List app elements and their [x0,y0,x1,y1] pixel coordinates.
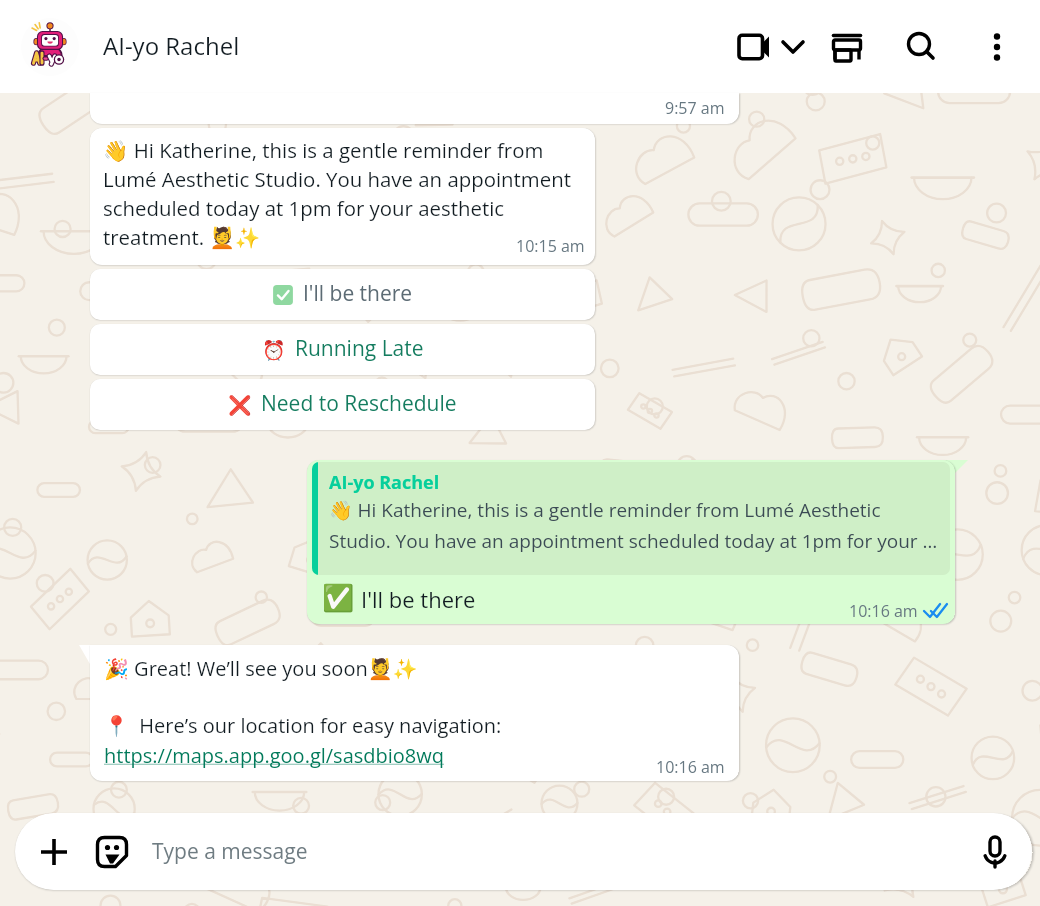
button[interactable]: Attach [32,830,76,874]
staticText: 9:57 am [665,97,725,119]
button[interactable]: ⏰ [90,324,595,375]
staticText: 10:16 am [849,600,918,622]
staticText: I'll be there [303,279,413,308]
button[interactable]: Business profile [823,23,871,71]
staticText: Running Late [295,334,424,363]
staticText: 10:15 am [516,235,585,257]
staticText: 🎉 Great! We’ll see you soon💆✨ [104,655,418,682]
staticText: 👋 Hi Katherine, this is a gentle reminde… [103,136,582,251]
button[interactable]: More options [977,27,1017,67]
staticText: AI-yo Rachel [329,470,440,495]
staticText: ❌ [228,394,252,416]
staticText: ⏰ [262,339,286,361]
button[interactable]: Call options [776,30,810,64]
staticText: ✅ [322,583,355,613]
button[interactable]: Stickers [90,830,134,874]
button[interactable]: Search [897,23,945,71]
staticText: AI-yo Rachel [103,29,240,62]
button[interactable]: https://maps.app.goo.gl/sasdbio8wq [104,739,445,766]
staticText: 10:16 am [656,756,725,778]
staticText: 👋 Hi Katherine, this is a gentle reminde… [329,497,940,554]
button[interactable]: ❌ [90,379,595,430]
staticText: I'll be there [361,584,476,614]
staticText: Need to Reschedule [261,389,457,418]
button[interactable]: I'll be there [90,269,595,320]
staticText: 📍 Here’s our location for easy navigatio… [104,712,502,739]
button[interactable]: Voice message [973,830,1017,874]
button[interactable]: Video call [732,25,776,69]
button[interactable]: Profile [21,18,79,76]
staticText: Type a message [152,837,308,866]
